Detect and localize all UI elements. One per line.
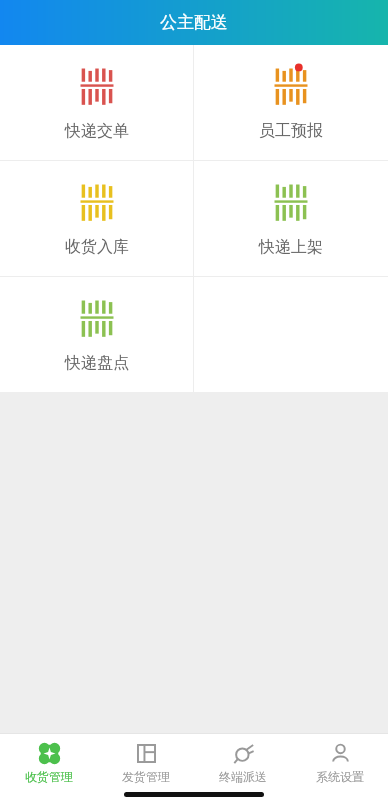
button[interactable]: 收货入库 [0, 161, 193, 276]
staticText: 快递交单 [65, 121, 129, 141]
button[interactable]: 系统设置 [291, 739, 388, 787]
staticText: 员工预报 [259, 121, 323, 141]
staticText: 发货管理 [122, 769, 170, 784]
staticText: 快递盘点 [65, 353, 129, 373]
staticText: 终端派送 [219, 769, 267, 784]
button[interactable]: 员工预报 [194, 45, 388, 160]
staticText: 快递上架 [259, 237, 323, 257]
staticText: 公主配送 [160, 12, 228, 33]
button[interactable]: 快递盘点 [0, 277, 193, 392]
button[interactable]: 快递交单 [0, 45, 193, 160]
button[interactable]: 终端派送 [194, 739, 291, 787]
staticText: 收货入库 [65, 237, 129, 257]
button[interactable]: 快递上架 [194, 161, 388, 276]
button[interactable]: 收货管理 [0, 739, 97, 787]
staticText: 系统设置 [316, 769, 364, 784]
button[interactable]: 发货管理 [97, 739, 194, 787]
staticText: 收货管理 [25, 769, 73, 784]
